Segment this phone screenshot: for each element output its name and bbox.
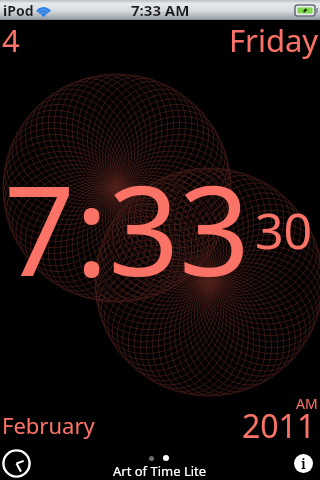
staticText: 7:33 AM (131, 0, 190, 20)
button[interactable]: Clock (2, 449, 31, 478)
staticText: Friday (229, 19, 319, 61)
staticText: AM (296, 394, 318, 413)
staticText: February (2, 410, 95, 440)
staticText: 4 (2, 19, 20, 61)
button[interactable]: Info (294, 454, 313, 473)
staticText: 30 (255, 196, 313, 264)
staticText: Art of Time Lite (113, 462, 207, 480)
staticText: 2011 (242, 404, 316, 448)
staticText: iPod (3, 1, 34, 20)
staticText: i (301, 454, 306, 473)
staticText: 7:33 (4, 143, 251, 312)
